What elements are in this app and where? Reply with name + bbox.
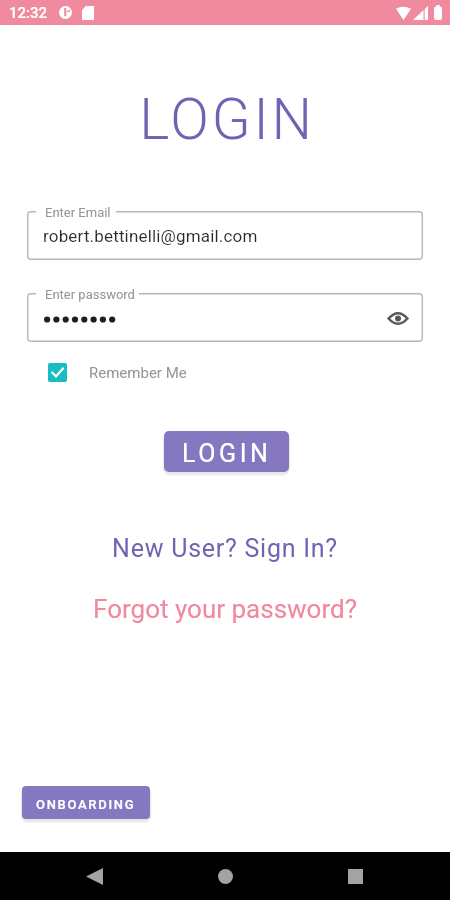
button[interactable]: Remember Me [40, 355, 197, 390]
staticText: robert.bettinelli@gmail.com [43, 226, 411, 246]
staticText: LOGIN [182, 439, 272, 468]
staticText: Enter Email [45, 205, 111, 220]
button[interactable]: Home [201, 852, 249, 900]
button[interactable]: Recent apps [331, 852, 379, 900]
button[interactable]: Back [70, 852, 118, 900]
button[interactable]: Show password [385, 305, 411, 331]
staticText: Enter password [45, 287, 135, 302]
staticText: 12:32 [9, 4, 48, 22]
staticText: ONBOARDING [36, 797, 136, 812]
button[interactable]: ONBOARDING [22, 786, 150, 819]
button[interactable]: LOGIN [164, 431, 289, 472]
staticText: LOGIN [139, 86, 315, 153]
staticText: Remember Me [89, 364, 187, 382]
button[interactable]: Forgot your password? [93, 594, 357, 624]
button[interactable]: New User? Sign In? [112, 534, 338, 563]
